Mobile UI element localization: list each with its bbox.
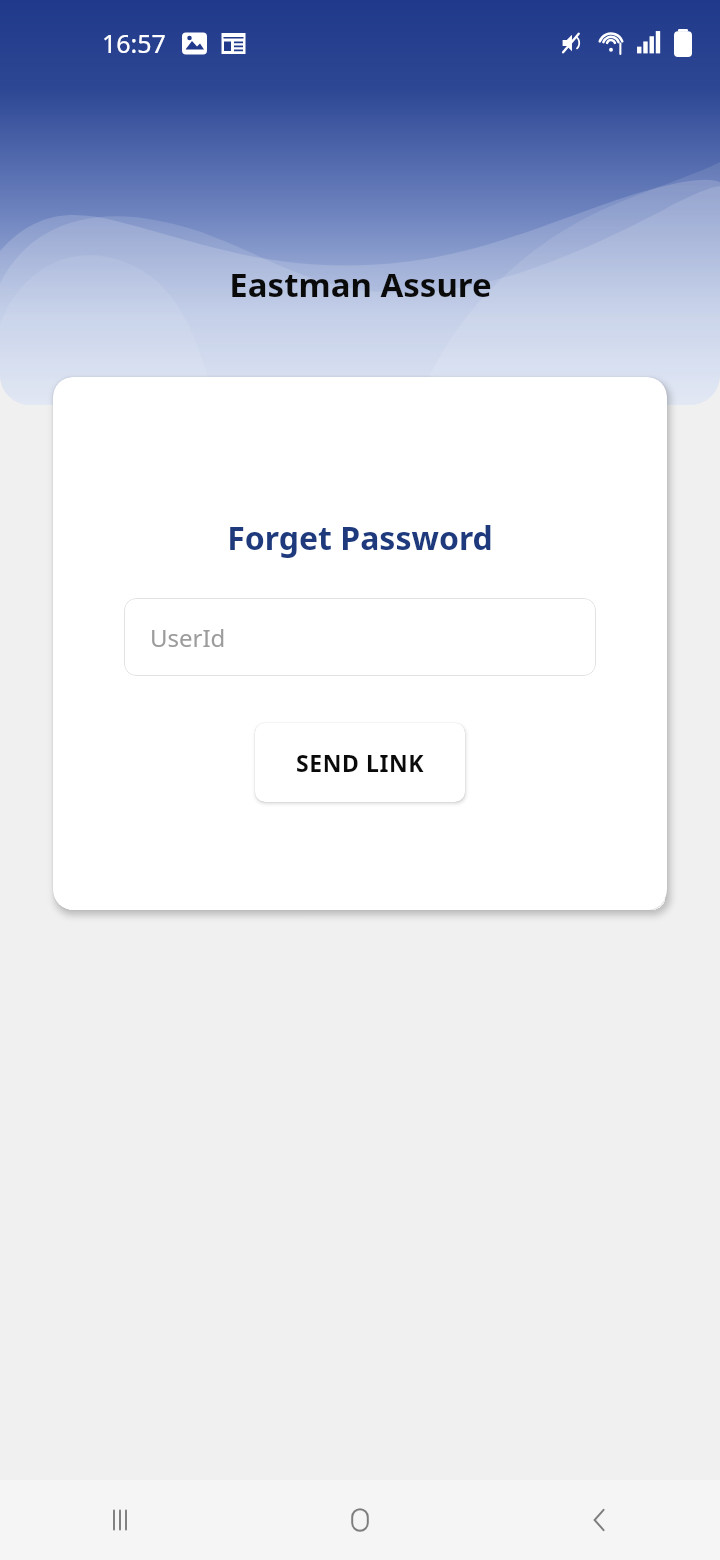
button[interactable]: Back: [480, 1480, 720, 1560]
button[interactable]: SEND LINK: [255, 723, 465, 802]
staticText: Eastman Assure: [229, 262, 492, 307]
staticText: UserId: [150, 621, 226, 654]
button[interactable]: UserId: [124, 598, 596, 676]
staticText: Forget Password: [227, 516, 493, 560]
staticText: 16:57: [102, 26, 166, 60]
button[interactable]: Home: [240, 1480, 480, 1560]
staticText: SEND LINK: [296, 747, 425, 778]
button[interactable]: Recent apps: [0, 1480, 240, 1560]
